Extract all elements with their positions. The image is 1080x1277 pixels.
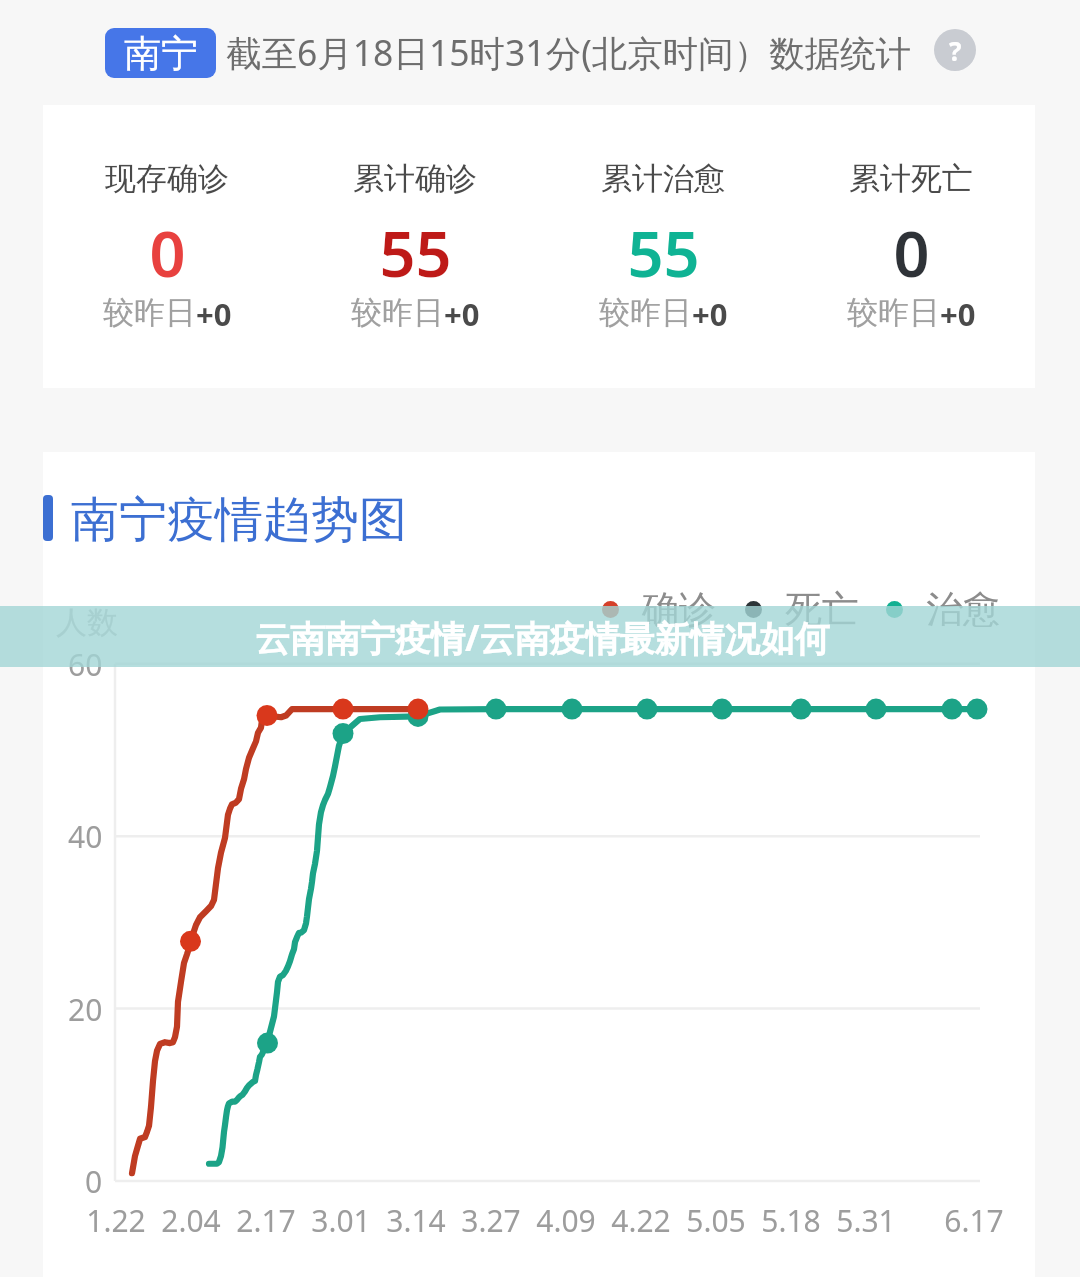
staticText: +0 bbox=[444, 293, 480, 335]
staticText: 55 bbox=[627, 210, 700, 296]
staticText: +0 bbox=[692, 293, 728, 335]
staticText: 5.05 bbox=[686, 1200, 746, 1241]
staticText: 2.04 bbox=[161, 1200, 221, 1241]
staticText: 治愈 bbox=[926, 586, 1000, 633]
staticText: 较昨日 bbox=[103, 293, 196, 332]
staticText: 0 bbox=[149, 210, 186, 296]
staticText: 1.22 bbox=[86, 1200, 146, 1241]
button[interactable]: 现存确诊 bbox=[43, 159, 291, 338]
button[interactable]: 累计确诊 bbox=[291, 159, 539, 338]
staticText: 55 bbox=[379, 210, 452, 296]
staticText: 20 bbox=[68, 989, 103, 1030]
staticText: 3.01 bbox=[311, 1200, 371, 1241]
staticText: 累计治愈 bbox=[601, 159, 725, 198]
staticText: 死亡 bbox=[785, 586, 859, 633]
staticText: 60 bbox=[68, 644, 103, 685]
staticText: 较昨日 bbox=[599, 293, 692, 332]
button[interactable]: 确诊 bbox=[602, 586, 716, 633]
staticText: 3.14 bbox=[386, 1200, 446, 1241]
staticText: 40 bbox=[68, 816, 103, 857]
staticText: 5.18 bbox=[761, 1200, 821, 1241]
button[interactable]: 累计治愈 bbox=[539, 159, 787, 338]
staticText: 累计死亡 bbox=[849, 159, 973, 198]
staticText: 0 bbox=[893, 210, 930, 296]
staticText: 确诊 bbox=[642, 586, 716, 633]
button[interactable]: 南宁 bbox=[105, 28, 216, 78]
staticText: +0 bbox=[196, 293, 232, 335]
staticText: 2.17 bbox=[236, 1200, 296, 1241]
staticText: 0 bbox=[85, 1161, 103, 1202]
staticText: 4.09 bbox=[536, 1200, 596, 1241]
button[interactable]: 治愈 bbox=[886, 586, 1000, 633]
staticText: 3.27 bbox=[461, 1200, 521, 1241]
staticText: +0 bbox=[940, 293, 976, 335]
staticText: 南宁 bbox=[124, 30, 198, 77]
staticText: 云南南宁疫情/云南疫情最新情况如何 bbox=[255, 614, 830, 662]
staticText: 6.17 bbox=[944, 1200, 1004, 1241]
staticText: 南宁疫情趋势图 bbox=[71, 490, 407, 550]
button[interactable]: Help bbox=[934, 29, 976, 71]
staticText: 较昨日 bbox=[847, 293, 940, 332]
staticText: 较昨日 bbox=[351, 293, 444, 332]
staticText: 人数 bbox=[56, 603, 118, 642]
staticText: 现存确诊 bbox=[105, 159, 229, 198]
button[interactable]: 死亡 bbox=[745, 586, 859, 633]
staticText: 累计确诊 bbox=[353, 159, 477, 198]
button[interactable]: 累计死亡 bbox=[787, 159, 1035, 338]
staticText: 4.22 bbox=[611, 1200, 671, 1241]
staticText: 5.31 bbox=[836, 1200, 896, 1241]
staticText: 截至6月18日15时31分(北京时间）数据统计 bbox=[226, 28, 912, 76]
staticText: ? bbox=[949, 33, 962, 68]
